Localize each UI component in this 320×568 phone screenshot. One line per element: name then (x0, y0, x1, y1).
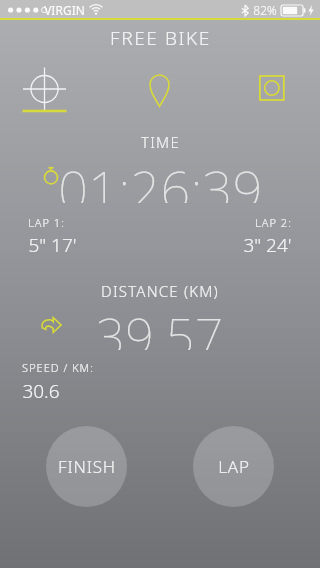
button[interactable]: FINISH (46, 426, 127, 507)
staticText: LAP 2: (255, 215, 292, 230)
staticText: 39.57 (96, 302, 224, 350)
staticText: 82% (253, 2, 277, 18)
button[interactable]: Camera (213, 61, 320, 117)
staticText: DISTANCE (KM) (101, 281, 219, 301)
staticText: FREE BIKE (110, 25, 211, 51)
staticText: VIRGIN (44, 2, 85, 18)
staticText: SPEED / KM: (22, 360, 94, 375)
staticText: LAP 1: (28, 215, 65, 230)
button[interactable]: Track (0, 61, 106, 117)
staticText: 01:26:39 (58, 153, 263, 203)
staticText: 30.6 (22, 378, 60, 404)
staticText: LAP (218, 455, 250, 478)
staticText: TIME (141, 132, 180, 152)
button[interactable]: Location (106, 61, 213, 117)
staticText: FINISH (58, 455, 116, 478)
staticText: 5" 17' (28, 232, 77, 258)
staticText: 3" 24' (243, 232, 292, 258)
button[interactable]: LAP (193, 426, 274, 507)
